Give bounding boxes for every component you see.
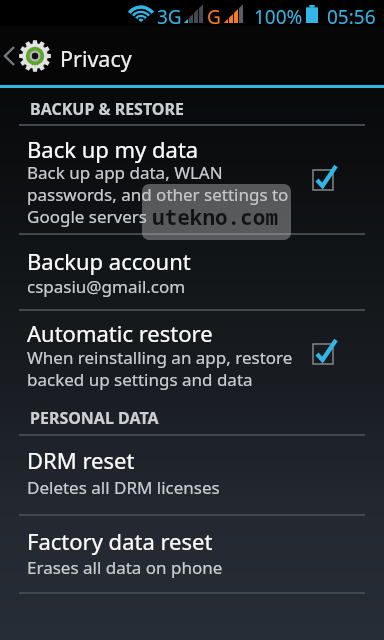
staticText: When reinstalling an app, restore: [27, 346, 293, 368]
staticText: BACKUP & RESTORE: [30, 98, 184, 120]
staticText: Automatic restore: [27, 318, 213, 348]
staticText: Deletes all DRM licenses: [27, 476, 220, 498]
staticText: 100%: [254, 4, 303, 30]
staticText: Erases all data on phone: [27, 556, 223, 578]
staticText: Back up my data: [27, 134, 199, 164]
staticText: Backup account: [27, 246, 191, 276]
button[interactable]: Toggle setting: [307, 160, 345, 198]
button[interactable]: [0, 435, 384, 515]
button[interactable]: [0, 310, 384, 402]
staticText: Google servers: [27, 205, 147, 227]
button[interactable]: [0, 234, 384, 311]
button[interactable]: [0, 125, 384, 234]
button[interactable]: [0, 515, 384, 593]
staticText: Privacy: [60, 44, 132, 73]
staticText: G: [207, 4, 221, 30]
button[interactable]: Navigate up: [0, 31, 60, 80]
other: Navigate up: [5, 47, 14, 65]
staticText: cspasiu@gmail.com: [27, 275, 186, 297]
staticText: 05:56: [327, 4, 376, 30]
staticText: Back up app data, WLAN: [27, 161, 223, 183]
staticText: utekno.com: [152, 203, 278, 232]
staticText: PERSONAL DATA: [30, 407, 159, 429]
staticText: Factory data reset: [27, 526, 213, 556]
staticText: backed up settings and data: [27, 368, 253, 390]
staticText: passwords, and other settings to: [27, 183, 289, 205]
staticText: DRM reset: [27, 445, 135, 475]
button[interactable]: Toggle setting: [307, 334, 345, 372]
staticText: 3G: [157, 4, 182, 30]
